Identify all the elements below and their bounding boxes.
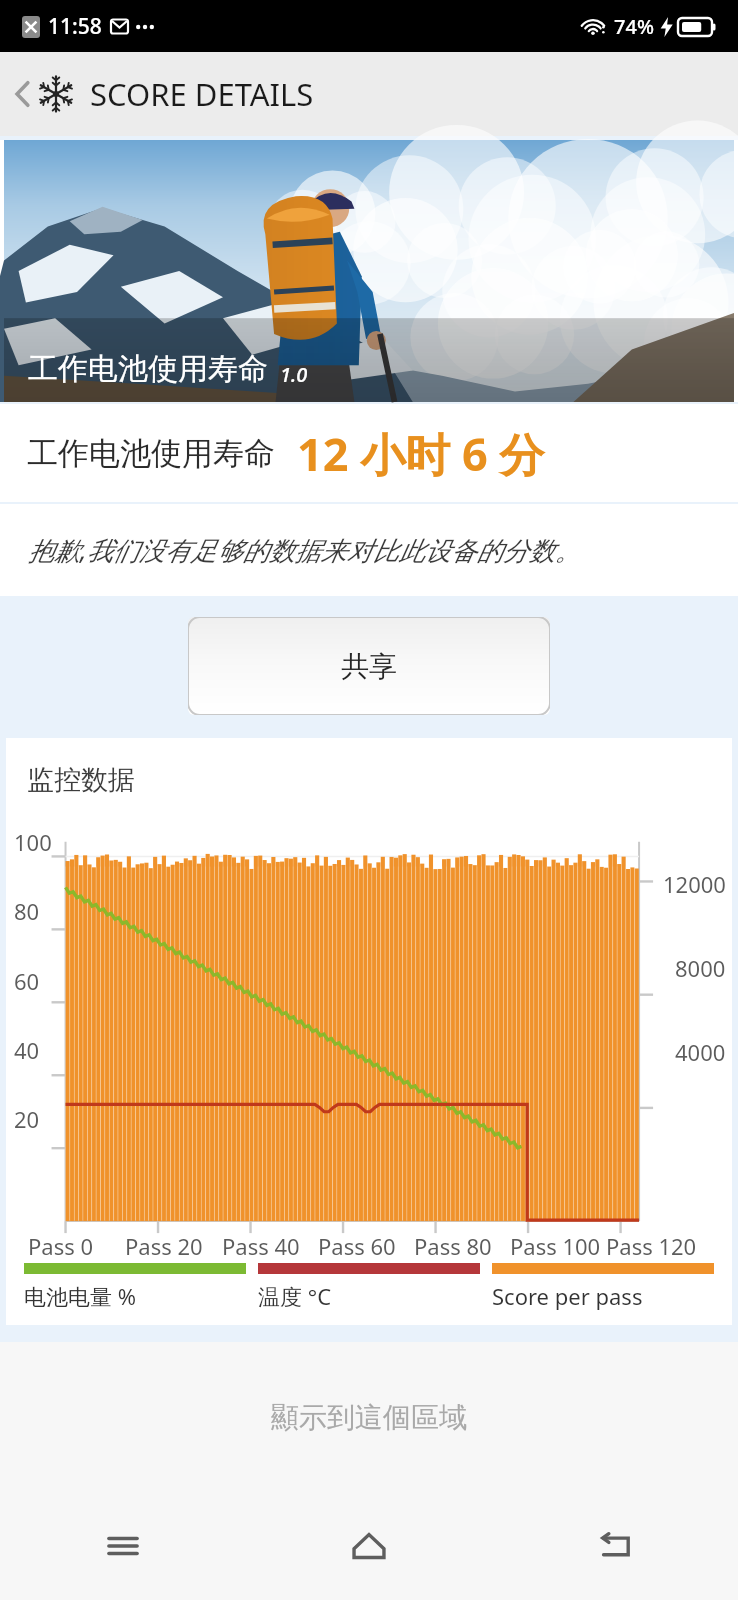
staticText: Pass 100 xyxy=(510,1231,601,1261)
staticText: 温度 °C xyxy=(258,1281,332,1311)
staticText: 100 xyxy=(14,827,52,857)
staticText: Pass 60 xyxy=(318,1231,396,1261)
staticText: Pass 40 xyxy=(222,1231,300,1261)
button[interactable]: Back xyxy=(492,1492,738,1600)
button[interactable]: Recent apps xyxy=(0,1492,246,1600)
button[interactable]: 共享 xyxy=(188,617,550,715)
staticText: 顯示到這個區域 xyxy=(271,1400,467,1435)
staticText: 共享 xyxy=(341,649,397,684)
button[interactable]: Back to score details xyxy=(0,52,738,136)
staticText: 1.0 xyxy=(280,361,308,388)
staticText: 20 xyxy=(14,1104,40,1134)
staticText: 工作电池使用寿命 xyxy=(28,350,268,388)
staticText: 40 xyxy=(14,1035,40,1065)
staticText: 工作电池使用寿命 xyxy=(27,434,275,473)
button[interactable]: Home xyxy=(246,1492,492,1600)
staticText: 监控数据 xyxy=(27,763,135,797)
staticText: 4000 xyxy=(675,1037,726,1067)
staticText: 抱歉,我们没有足够的数据来对比此设备的分数。 xyxy=(28,532,581,568)
staticText: 60 xyxy=(14,966,40,996)
staticText: Pass 0 xyxy=(28,1231,94,1261)
staticText: 8000 xyxy=(675,953,726,983)
staticText: SCORE DETAILS xyxy=(90,73,314,115)
staticText: 12 小时 6 分 xyxy=(297,423,545,484)
staticText: 12000 xyxy=(663,869,726,899)
staticText: Pass 20 xyxy=(125,1231,203,1261)
staticText: 80 xyxy=(14,896,40,926)
staticText: Pass 120 xyxy=(606,1231,697,1261)
staticText: Pass 80 xyxy=(414,1231,492,1261)
staticText: 电池电量 % xyxy=(24,1281,137,1311)
staticText: 74% xyxy=(614,13,654,40)
staticText: 11:58 xyxy=(48,12,102,41)
staticText: Score per pass xyxy=(492,1281,643,1311)
